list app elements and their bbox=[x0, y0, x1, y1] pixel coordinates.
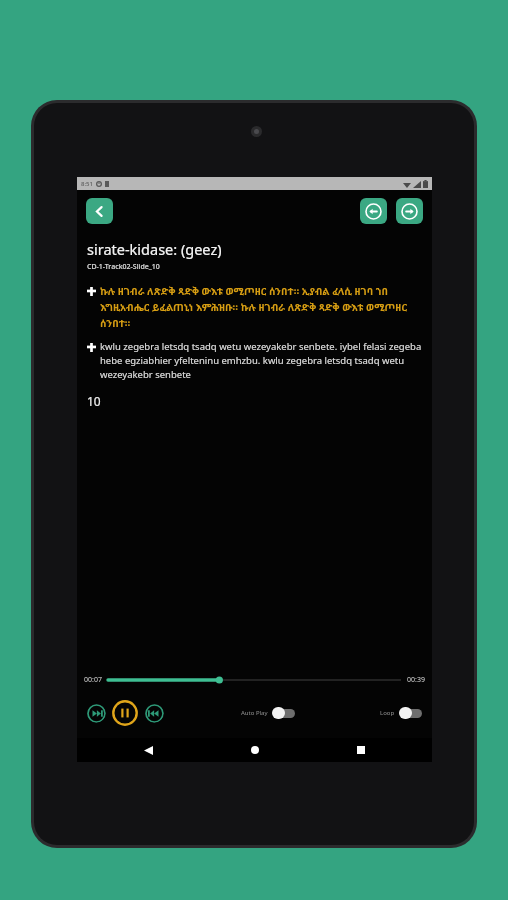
button[interactable]: Pause bbox=[111, 699, 139, 727]
staticText: 10 bbox=[87, 393, 101, 409]
button[interactable]: Auto Play bbox=[241, 707, 296, 719]
staticText: 8:51 bbox=[81, 180, 93, 188]
button[interactable]: Previous slide bbox=[360, 198, 387, 224]
button[interactable]: Rewind bbox=[86, 703, 106, 723]
button[interactable]: Loop bbox=[380, 707, 423, 719]
button[interactable]: Seek bar bbox=[108, 673, 401, 687]
staticText: ኩሉ ዘገብራ ለጽድቅ ጻድቅ ውእቱ ወሚጦዘር ሰንበተ። ኢያብል ፈላ… bbox=[100, 284, 422, 329]
button[interactable]: Fast forward bbox=[144, 703, 164, 723]
button[interactable]: Back bbox=[86, 198, 113, 224]
button[interactable]: Recent apps bbox=[350, 739, 372, 761]
button[interactable]: Home bbox=[244, 739, 266, 761]
button[interactable]: Next slide bbox=[396, 198, 423, 224]
staticText: Auto Play bbox=[241, 709, 268, 717]
staticText: CD-1-Track02-Slide_10 bbox=[87, 262, 160, 272]
staticText: Loop bbox=[380, 709, 395, 717]
staticText: sirate-kidase: (geez) bbox=[87, 239, 222, 259]
staticText: kwlu zegebra letsdq tsadq wetu wezeyakeb… bbox=[100, 340, 422, 381]
button[interactable]: Back bbox=[137, 739, 159, 761]
staticText: 00:39 bbox=[407, 675, 425, 685]
staticText: 00:07 bbox=[84, 675, 102, 685]
